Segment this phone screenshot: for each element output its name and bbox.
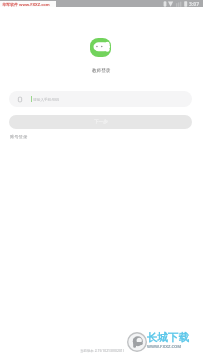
staticText: www.FXXZ.com [19, 2, 50, 7]
staticText: WWW.FXXZ.COM [147, 344, 182, 350]
staticText: 教师登录 [92, 68, 111, 74]
staticText: 下一步 [94, 119, 108, 125]
staticText: 账号登录 [10, 134, 28, 139]
button[interactable]: 下一步 [9, 115, 192, 129]
other: Phone number [18, 97, 22, 102]
staticText: 华军软件 [2, 2, 18, 7]
button[interactable]: Phone number [9, 91, 192, 107]
staticText: 长城下载 [147, 331, 189, 344]
staticText: 当前版本 2.19.10213(V0201) [80, 348, 124, 353]
staticText: 请输入手机号码 [33, 97, 59, 102]
staticText: 3:07 [189, 1, 199, 8]
button[interactable]: 账号登录 [10, 134, 28, 139]
